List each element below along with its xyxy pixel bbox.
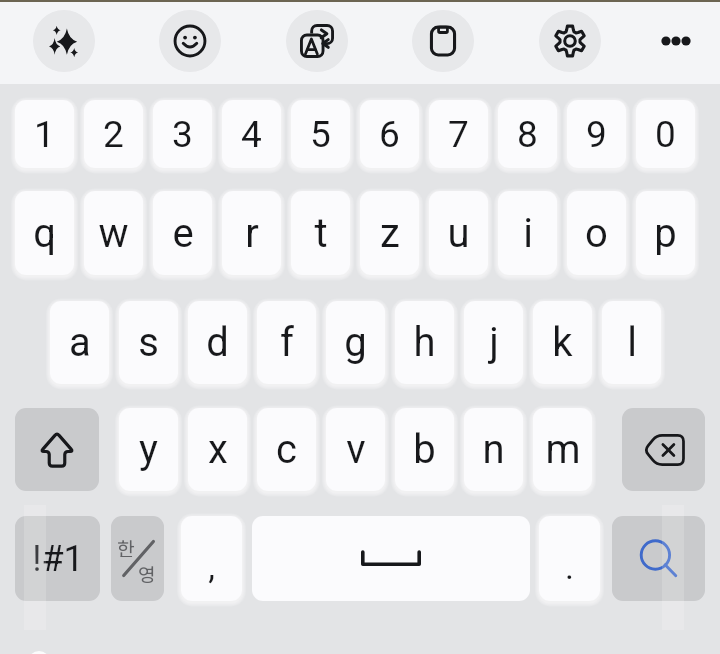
button[interactable]: u (429, 191, 488, 275)
button[interactable]: 8 (498, 100, 557, 168)
staticText: 6 (379, 113, 400, 156)
button[interactable]: i (498, 191, 557, 275)
button[interactable]: k (533, 301, 592, 384)
staticText: 한 (117, 534, 135, 562)
button[interactable]: Keyboard settings (539, 10, 601, 72)
staticText: z (380, 210, 400, 257)
button[interactable]: j (464, 301, 523, 384)
staticText: a (69, 319, 91, 366)
staticText: 7 (448, 113, 469, 156)
staticText: , (208, 547, 215, 587)
button[interactable]: !#1 (15, 516, 100, 601)
staticText: p (654, 210, 677, 257)
staticText: j (489, 319, 499, 366)
button[interactable]: t (291, 191, 350, 275)
staticText: f (280, 319, 294, 366)
button[interactable]: 5 (291, 100, 350, 168)
button[interactable]: g (326, 301, 385, 384)
staticText: q (33, 210, 56, 257)
button[interactable]: v (326, 408, 385, 491)
button[interactable]: 0 (636, 100, 695, 168)
button[interactable]: w (84, 191, 143, 275)
button[interactable]: 2 (84, 100, 143, 168)
staticText: v (346, 426, 366, 473)
staticText: 8 (517, 113, 538, 156)
button[interactable]: Switch input language (111, 516, 164, 601)
staticText: 1 (34, 113, 55, 156)
staticText: t (314, 210, 328, 257)
button[interactable]: l (602, 301, 661, 384)
button[interactable]: o (567, 191, 626, 275)
button[interactable]: c (257, 408, 316, 491)
staticText: m (545, 426, 581, 473)
button[interactable]: , (181, 516, 242, 601)
button[interactable]: h (395, 301, 454, 384)
staticText: !#1 (32, 538, 84, 580)
staticText: k (552, 319, 573, 366)
button[interactable]: 7 (429, 100, 488, 168)
button[interactable]: e (153, 191, 212, 275)
button[interactable]: n (464, 408, 523, 491)
button[interactable]: Emoji (159, 10, 221, 72)
staticText: l (627, 319, 637, 366)
staticText: e (172, 210, 194, 257)
staticText: u (447, 210, 470, 257)
button[interactable]: p (636, 191, 695, 275)
staticText: 영 (138, 560, 156, 588)
staticText: r (245, 210, 259, 257)
staticText: 0 (655, 113, 676, 156)
button[interactable]: z (360, 191, 419, 275)
button[interactable]: r (222, 191, 281, 275)
button[interactable]: 6 (360, 100, 419, 168)
staticText: s (138, 319, 159, 366)
staticText: d (206, 319, 229, 366)
staticText: o (585, 210, 608, 257)
button[interactable]: 1 (15, 100, 74, 168)
staticText: 3 (172, 113, 193, 156)
button[interactable]: More options (646, 11, 706, 71)
staticText: 9 (586, 113, 607, 156)
button[interactable]: y (119, 408, 178, 491)
staticText: h (413, 319, 436, 366)
staticText: 5 (310, 113, 331, 156)
button[interactable]: b (395, 408, 454, 491)
button[interactable]: s (119, 301, 178, 384)
button[interactable]: q (15, 191, 74, 275)
button[interactable]: Translate (286, 10, 348, 72)
staticText: c (276, 426, 297, 473)
button[interactable]: Delete (622, 408, 705, 491)
staticText: w (98, 210, 129, 257)
button[interactable]: m (533, 408, 592, 491)
staticText: n (482, 426, 505, 473)
staticText: x (208, 426, 228, 473)
button[interactable]: a (50, 301, 109, 384)
staticText: g (344, 319, 367, 366)
button[interactable]: Space (252, 516, 530, 601)
staticText: i (523, 210, 533, 257)
button[interactable]: Search (612, 516, 705, 601)
staticText: 4 (241, 113, 262, 156)
button[interactable]: 4 (222, 100, 281, 168)
button[interactable]: Clipboard (412, 10, 474, 72)
staticText: . (565, 547, 574, 587)
button[interactable]: 9 (567, 100, 626, 168)
button[interactable]: AI writing suggestions (33, 10, 95, 72)
button[interactable]: . (539, 516, 600, 601)
button[interactable]: f (257, 301, 316, 384)
staticText: y (139, 426, 158, 473)
staticText: 2 (103, 113, 124, 156)
button[interactable]: 3 (153, 100, 212, 168)
button[interactable]: x (188, 408, 247, 491)
staticText: b (413, 426, 436, 473)
button[interactable]: Shift (15, 408, 99, 491)
button[interactable]: d (188, 301, 247, 384)
